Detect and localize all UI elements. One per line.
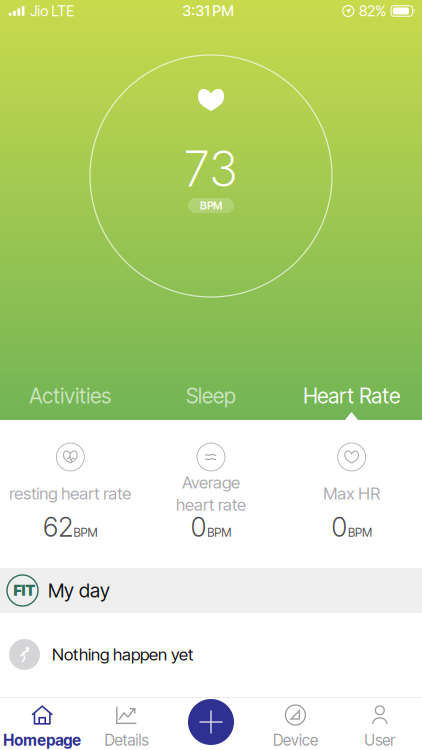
staticText: Homepage — [3, 731, 81, 750]
staticText: 62 — [43, 511, 73, 543]
staticText: My day — [48, 579, 110, 602]
staticText: User — [364, 731, 395, 750]
staticText: Activities — [29, 383, 111, 409]
button[interactable]: User — [338, 697, 422, 750]
button[interactable]: Activities — [0, 374, 141, 418]
button[interactable]: Sleep — [141, 374, 281, 418]
staticText: Details — [105, 731, 149, 750]
staticText: BPM — [348, 525, 372, 540]
staticText: Nothing happen yet — [52, 644, 193, 665]
button[interactable]: Heart Rate — [281, 374, 422, 418]
staticText: heart rate — [176, 494, 246, 515]
staticText: 82% — [359, 2, 386, 20]
staticText: BPM — [74, 525, 98, 540]
staticText: 73 — [184, 140, 238, 198]
staticText: Sleep — [186, 383, 236, 409]
staticText: resting heart rate — [9, 483, 131, 504]
staticText: Device — [273, 731, 318, 750]
staticText: Jio LTE — [30, 2, 74, 20]
staticText: 3:31 PM — [182, 2, 234, 20]
staticText: 0 — [191, 511, 207, 543]
staticText: BPM — [207, 525, 231, 540]
staticText: Heart Rate — [303, 383, 400, 409]
staticText: Max HR — [323, 483, 380, 504]
button[interactable]: Homepage — [0, 697, 84, 750]
button[interactable]: Device — [253, 697, 338, 750]
staticText: BPM — [200, 199, 222, 212]
staticText: 0 — [331, 511, 347, 543]
staticText: FIT — [13, 582, 35, 599]
button[interactable]: Details — [84, 697, 169, 750]
button[interactable]: Nothing happen yet — [0, 613, 422, 696]
staticText: Average — [182, 472, 240, 492]
button[interactable]: FIT — [0, 568, 422, 613]
button[interactable]: Add — [188, 699, 234, 745]
